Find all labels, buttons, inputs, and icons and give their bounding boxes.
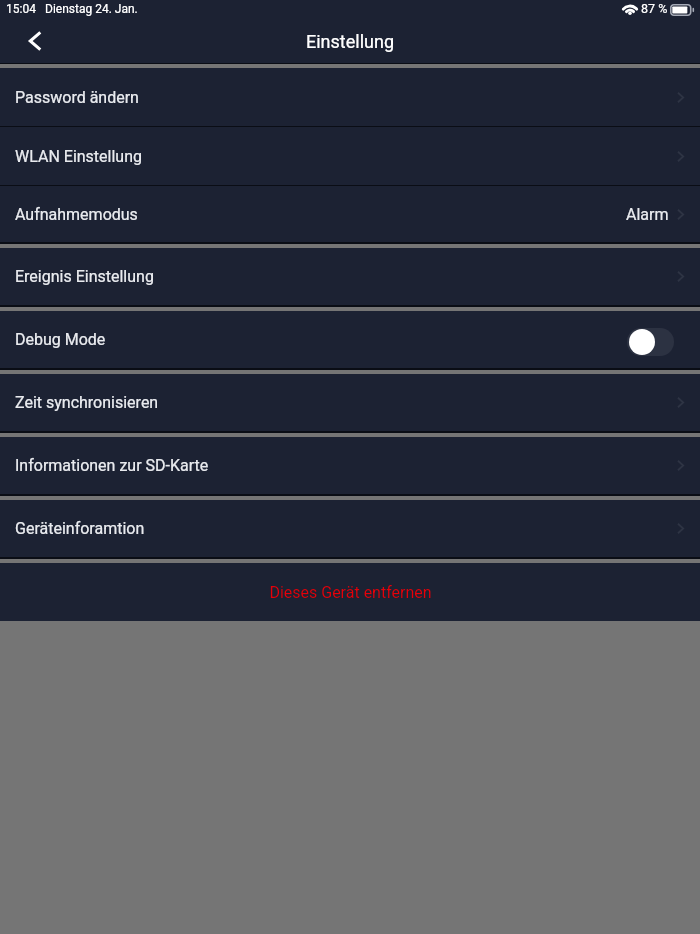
button[interactable]: WLAN Einstellung xyxy=(0,127,700,185)
staticText: 15:04 xyxy=(6,2,36,16)
button[interactable]: Aufnahmemodus xyxy=(0,186,700,242)
staticText: Zeit synchronisieren xyxy=(15,393,159,412)
button[interactable]: Password ändern xyxy=(0,68,700,126)
staticText: Password ändern xyxy=(15,88,139,107)
staticText: Dieses Gerät entfernen xyxy=(269,583,432,602)
staticText: Geräteinforamtion xyxy=(15,519,145,538)
staticText: Aufnahmemodus xyxy=(15,205,138,224)
button[interactable]: Dieses Gerät entfernen xyxy=(0,563,700,621)
staticText: Alarm xyxy=(626,205,669,224)
button[interactable]: Zeit synchronisieren xyxy=(0,374,700,431)
staticText: Ereignis Einstellung xyxy=(15,267,154,286)
staticText: Dienstag 24. Jan. xyxy=(45,2,138,16)
button[interactable]: Informationen zur SD-Karte xyxy=(0,437,700,494)
button[interactable]: Ereignis Einstellung xyxy=(0,248,700,305)
button[interactable]: Debug Mode xyxy=(0,311,700,368)
staticText: Einstellung xyxy=(306,31,394,52)
button[interactable]: Back xyxy=(17,24,53,60)
staticText: Informationen zur SD-Karte xyxy=(15,456,209,475)
staticText: WLAN Einstellung xyxy=(15,147,142,166)
button[interactable]: Debug Mode toggle xyxy=(627,328,674,356)
staticText: Debug Mode xyxy=(15,330,106,349)
button[interactable]: Geräteinforamtion xyxy=(0,500,700,557)
staticText: 87 % xyxy=(641,1,668,16)
